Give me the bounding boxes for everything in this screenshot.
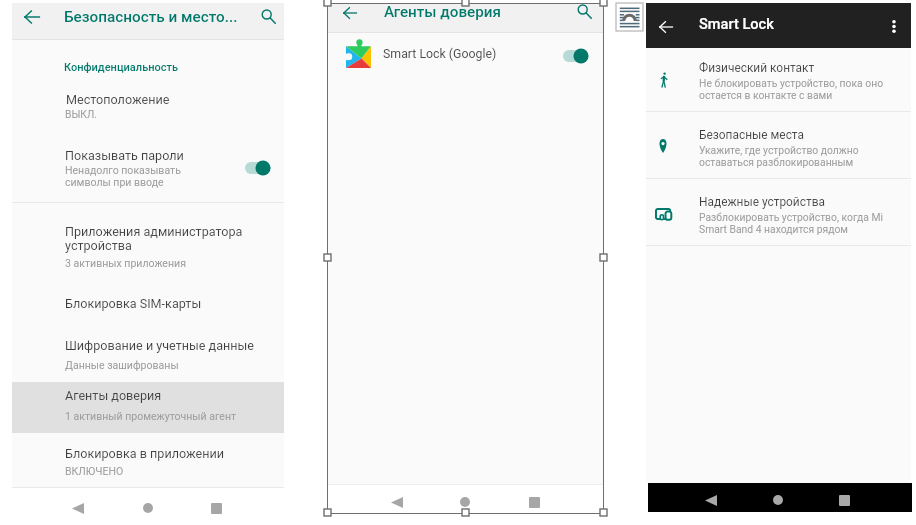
button[interactable]: Back <box>700 489 722 511</box>
staticText: ВЫКЛ. <box>65 108 97 121</box>
staticText: Не блокировать устройство, пока оно оста… <box>699 77 884 101</box>
button[interactable] <box>12 218 284 278</box>
staticText: Конфиденциальность <box>64 60 179 73</box>
staticText: Smart Lock <box>699 15 774 33</box>
button[interactable]: Home <box>137 497 159 519</box>
staticText: Шифрование и учетные данные <box>65 338 255 353</box>
staticText: Блокировка SIM-карты <box>65 296 202 311</box>
button[interactable]: Home <box>454 491 476 513</box>
staticText: Показывать пароли <box>65 148 184 163</box>
staticText: 1 активный промежуточный агент <box>65 410 237 423</box>
staticText: Местоположение <box>66 92 170 107</box>
staticText: Безопасные места <box>699 128 804 143</box>
staticText: Агенты доверия <box>384 2 501 21</box>
button[interactable]: Search <box>255 3 282 30</box>
button[interactable]: Back <box>386 491 408 513</box>
button[interactable] <box>12 85 284 121</box>
button[interactable] <box>328 41 603 74</box>
staticText: Блокировка в приложении <box>65 446 224 461</box>
button[interactable]: Layout options <box>616 3 643 31</box>
staticText: Приложения администратора устройства <box>65 225 243 253</box>
staticText: Безопасность и место... <box>64 7 238 26</box>
button[interactable] <box>646 179 911 246</box>
button[interactable]: Toggle <box>559 43 593 69</box>
button[interactable]: Recents <box>833 489 855 511</box>
staticText: Разблокировать устройство, когда Mi Smar… <box>699 211 883 235</box>
staticText: Надежные устройства <box>699 195 825 210</box>
button[interactable] <box>646 112 911 178</box>
staticText: Укажите, где устройство должно оставатьс… <box>699 144 859 168</box>
button[interactable] <box>12 290 284 324</box>
button[interactable] <box>12 331 284 377</box>
button[interactable]: Back <box>652 13 680 41</box>
staticText: Агенты доверия <box>65 388 162 403</box>
staticText: Данные зашифрованы <box>65 359 179 372</box>
button[interactable] <box>646 48 911 111</box>
button[interactable]: Back <box>19 4 45 30</box>
button[interactable] <box>12 141 284 193</box>
button[interactable] <box>12 439 284 485</box>
button[interactable]: Toggle <box>241 155 275 181</box>
staticText: ВКЛЮЧЕНО <box>65 465 124 478</box>
button[interactable]: Recents <box>523 491 545 513</box>
button[interactable]: Search <box>571 0 598 25</box>
button[interactable]: Back <box>67 497 89 519</box>
button[interactable] <box>12 382 284 433</box>
button[interactable]: Recents <box>205 497 227 519</box>
staticText: Smart Lock (Google) <box>383 46 497 61</box>
staticText: Физический контакт <box>699 61 815 76</box>
button[interactable]: Home <box>767 489 789 511</box>
staticText: Ненадолго показывать символы при вводе <box>65 165 181 189</box>
staticText: 3 активных приложения <box>65 257 186 270</box>
button[interactable]: More options <box>881 13 907 39</box>
button[interactable]: Back <box>336 0 363 26</box>
